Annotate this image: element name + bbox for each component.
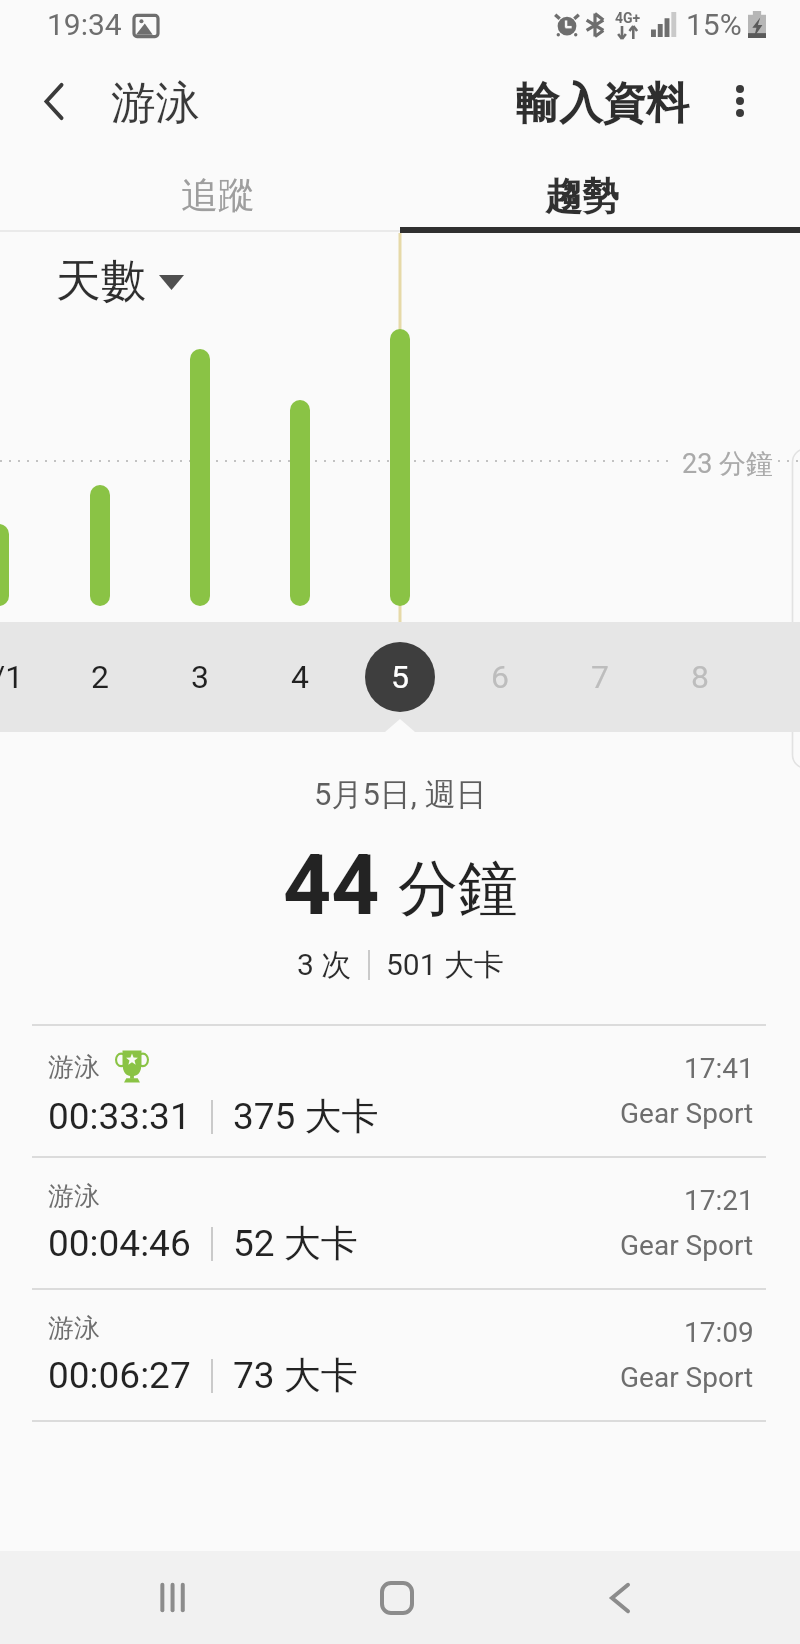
button[interactable]: 游泳 xyxy=(0,1290,800,1420)
staticText: 375 大卡 xyxy=(233,1093,379,1140)
staticText: 44 xyxy=(283,836,380,934)
button[interactable]: 4 xyxy=(240,622,360,732)
staticText: 6 xyxy=(491,658,509,696)
staticText: 17:21 xyxy=(684,1184,754,1217)
button[interactable]: 游泳 xyxy=(0,1158,800,1288)
staticText: 00:06:27 xyxy=(48,1354,191,1397)
staticText: 游泳 xyxy=(48,1051,100,1084)
staticText: 501 大卡 xyxy=(386,946,505,984)
staticText: 8 xyxy=(691,658,709,696)
button[interactable]: More options xyxy=(708,69,772,133)
staticText: 3 xyxy=(191,658,209,696)
staticText: 7 xyxy=(591,658,609,696)
staticText: 52 大卡 xyxy=(233,1220,358,1267)
button[interactable]: 2 xyxy=(40,622,160,732)
button[interactable]: 輸入資料 xyxy=(494,69,712,137)
button[interactable]: Back xyxy=(570,1551,670,1644)
staticText: 趨勢 xyxy=(545,173,619,220)
staticText: 23 分鐘 xyxy=(682,447,774,481)
button[interactable]: 趨勢 xyxy=(400,156,800,233)
staticText: 4 xyxy=(291,658,309,696)
staticText: 5 xyxy=(391,658,409,696)
button[interactable]: 天數 xyxy=(44,241,196,322)
button[interactable]: Recents xyxy=(122,1551,222,1644)
staticText: 游泳 xyxy=(111,75,200,131)
staticText: 游泳 xyxy=(48,1312,100,1345)
staticText: 5/1 xyxy=(0,658,24,696)
staticText: 5月5日, 週日 xyxy=(314,775,487,814)
button[interactable]: 游泳 xyxy=(89,69,222,137)
staticText: 天數 xyxy=(56,253,146,310)
button[interactable]: Home xyxy=(347,1551,447,1644)
button[interactable]: 3 xyxy=(140,622,260,732)
staticText: 分鐘 xyxy=(398,851,518,927)
button[interactable]: 6 xyxy=(440,622,560,732)
button[interactable]: 7 xyxy=(540,622,660,732)
staticText: 游泳 xyxy=(48,1180,100,1213)
staticText: Gear Sport xyxy=(620,1361,754,1394)
staticText: 73 大卡 xyxy=(233,1352,358,1399)
button[interactable]: 追蹤 xyxy=(0,156,400,233)
staticText: 17:41 xyxy=(684,1052,754,1085)
staticText: 4G+ xyxy=(615,10,641,26)
staticText: 輸入資料 xyxy=(516,76,690,131)
staticText: 00:33:31 xyxy=(48,1095,191,1138)
button[interactable]: 游泳 xyxy=(0,1026,800,1156)
staticText: 19:34 xyxy=(47,7,122,42)
staticText: 17:09 xyxy=(684,1316,754,1349)
staticText: 追蹤 xyxy=(181,172,255,219)
staticText: Gear Sport xyxy=(620,1097,754,1130)
button[interactable]: Back xyxy=(22,69,86,133)
staticText: 3 次 xyxy=(297,946,352,984)
staticText: 00:04:46 xyxy=(48,1222,191,1265)
staticText: 15% xyxy=(686,7,742,42)
button[interactable]: 5/1 xyxy=(0,622,59,732)
staticText: Gear Sport xyxy=(620,1229,754,1262)
staticText: 2 xyxy=(91,658,109,696)
button[interactable]: 8 xyxy=(640,622,760,732)
button[interactable]: 5 xyxy=(340,622,460,732)
